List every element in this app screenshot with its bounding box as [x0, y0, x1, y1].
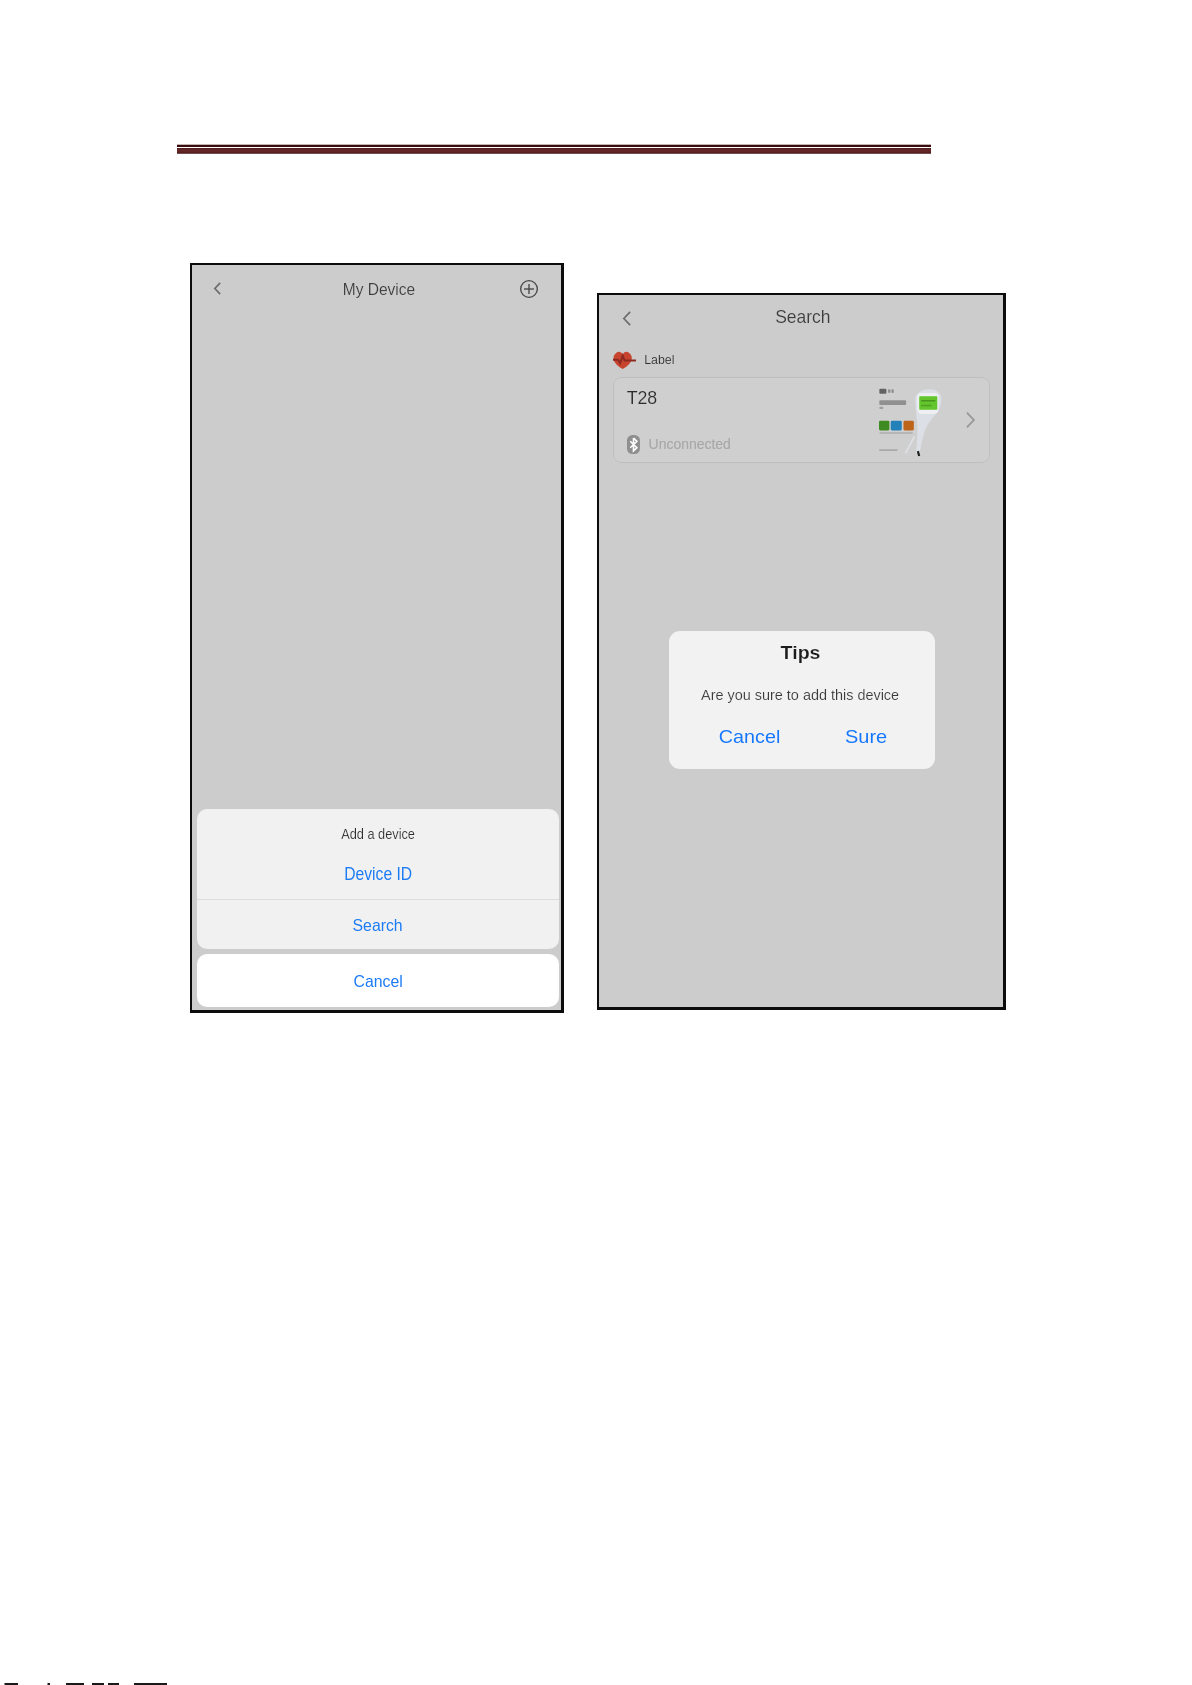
staticText: T28	[627, 387, 657, 408]
button[interactable]: Search	[197, 900, 559, 949]
staticText: Search	[352, 915, 403, 934]
staticText: Search	[775, 307, 831, 327]
staticText: Tips	[781, 642, 821, 663]
staticText: My Device	[343, 280, 415, 299]
button[interactable]: Sure	[831, 722, 901, 750]
button[interactable]: Device ID	[197, 852, 559, 896]
staticText: Device ID	[344, 864, 413, 884]
button[interactable]: Back	[207, 275, 228, 302]
staticText: Label	[644, 352, 675, 367]
button[interactable]: Add device	[520, 280, 538, 298]
button[interactable]: T28	[613, 377, 990, 463]
button[interactable]: Cancel	[197, 954, 559, 1007]
staticText: Add a device	[341, 826, 416, 842]
staticText: Are you sure to add this device	[701, 687, 900, 703]
staticText: Cancel	[353, 971, 403, 990]
staticText: Cancel	[719, 726, 781, 747]
staticText: Sure	[845, 726, 888, 747]
staticText: Unconnected	[649, 435, 731, 452]
button[interactable]: Cancel	[705, 722, 795, 750]
button[interactable]: Back	[616, 304, 638, 333]
